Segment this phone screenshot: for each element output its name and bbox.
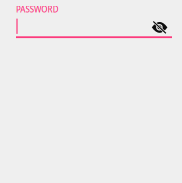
button[interactable]: Hide password [147,14,173,40]
staticText: PASSWORD [16,4,59,15]
